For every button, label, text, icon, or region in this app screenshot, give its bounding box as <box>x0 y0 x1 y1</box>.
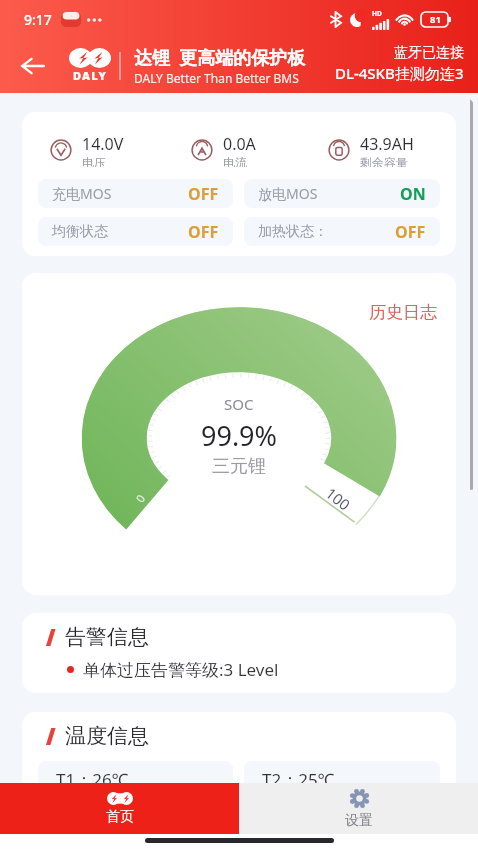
staticText: HD <box>372 9 382 18</box>
button[interactable]: 加热状态： <box>244 217 440 246</box>
staticText: 99.9% <box>201 417 278 454</box>
staticText: 单体过压告警等级:3 Level <box>83 658 279 681</box>
staticText: 蓝牙已连接 <box>394 44 464 62</box>
staticText: T2：25℃ <box>262 768 335 791</box>
staticText: 81 <box>430 13 441 26</box>
staticText: OFF <box>395 221 426 243</box>
button[interactable]: 设置 <box>239 783 478 834</box>
staticText: 100 <box>323 483 354 512</box>
staticText: 达锂 更高端的保护板 <box>134 45 306 70</box>
staticText: ON <box>400 183 426 205</box>
button[interactable]: 充电MOS <box>38 179 233 208</box>
staticText: 加热状态： <box>258 223 328 241</box>
staticText: SOC <box>224 394 254 414</box>
button[interactable]: 首页 <box>0 783 239 834</box>
button[interactable]: 历史日志 <box>369 302 437 323</box>
staticText: T1：26℃ <box>56 768 129 791</box>
button[interactable]: Back <box>0 38 64 93</box>
staticText: 14.0V <box>82 133 124 155</box>
staticText: 9:17 <box>24 10 52 29</box>
staticText: 均衡状态 <box>52 223 108 241</box>
staticText: DL-4SKB挂测勿连3 <box>335 63 464 83</box>
staticText: 告警信息 <box>65 624 149 650</box>
button[interactable]: T2：25℃ <box>244 761 440 797</box>
staticText: 充电MOS <box>52 184 112 203</box>
button[interactable]: 放电MOS <box>244 179 440 208</box>
staticText: 三元锂 <box>212 455 266 478</box>
staticText: 设置 <box>345 812 373 830</box>
staticText: DALY <box>73 68 108 83</box>
staticText: DALY Better Than Better BMS <box>134 70 299 86</box>
staticText: 剩余容量 <box>360 155 408 167</box>
staticText: 放电MOS <box>258 184 318 203</box>
staticText: 0 <box>132 491 147 504</box>
staticText: 首页 <box>106 808 134 826</box>
staticText: OFF <box>188 183 219 205</box>
staticText: 43.9AH <box>360 133 414 155</box>
staticText: 电压 <box>82 155 106 167</box>
staticText: 历史日志 <box>369 302 437 323</box>
staticText: OFF <box>188 221 219 243</box>
button[interactable]: 均衡状态 <box>38 217 233 246</box>
staticText: 电流 <box>223 155 247 167</box>
staticText: 温度信息 <box>65 723 149 749</box>
staticText: 0.0A <box>223 133 256 155</box>
button[interactable]: T1：26℃ <box>38 761 233 797</box>
